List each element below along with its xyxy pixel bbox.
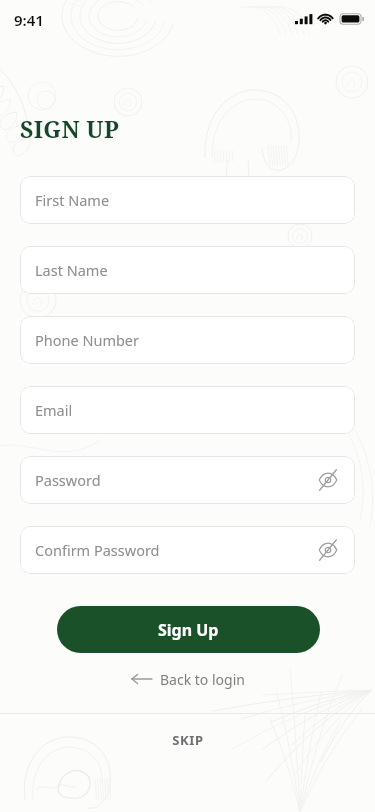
button[interactable]: SKIP [0,726,375,754]
staticText: Back to login [160,670,245,689]
staticText: SKIP [172,731,204,749]
button[interactable]: First Name [20,176,355,224]
button[interactable]: Sign Up [57,606,320,653]
button[interactable]: Show password [317,539,339,561]
staticText: SIGN UP [20,113,120,144]
button[interactable]: Email [20,386,355,434]
button[interactable]: Show password [317,469,339,491]
staticText: Sign Up [158,619,219,641]
staticText: Email [35,400,73,420]
button[interactable]: Last Name [20,246,355,294]
staticText: Last Name [35,260,108,280]
staticText: Phone Number [35,330,140,350]
staticText: Password [35,470,101,490]
button[interactable]: Password [20,456,355,504]
staticText: Confirm Password [35,540,160,560]
staticText: First Name [35,190,110,210]
button[interactable]: Confirm Password [20,526,355,574]
button[interactable]: Phone Number [20,316,355,364]
staticText: 9:41 [14,10,44,30]
button[interactable]: Back to login [0,666,375,692]
